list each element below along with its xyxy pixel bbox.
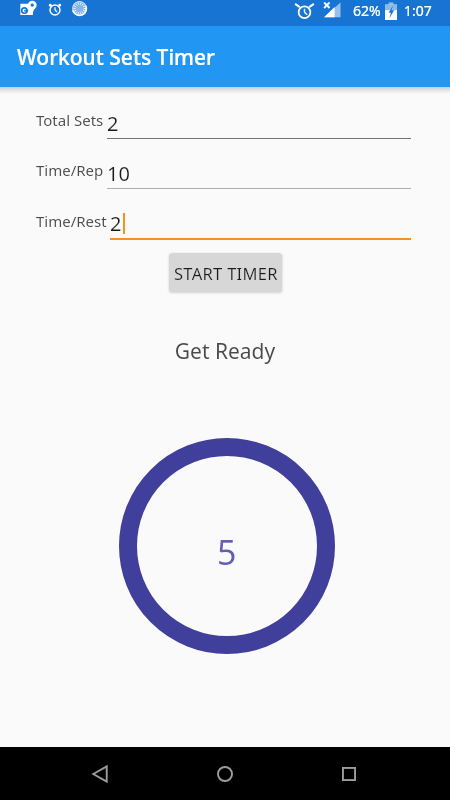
- button[interactable]: Recents: [325, 750, 373, 798]
- staticText: Get Ready: [0, 337, 450, 366]
- staticText: Total Sets: [36, 110, 104, 130]
- button[interactable]: Home: [201, 750, 249, 798]
- staticText: Workout Sets Timer: [17, 43, 215, 72]
- staticText: 10: [107, 160, 130, 187]
- staticText: START TIMER: [174, 262, 278, 284]
- staticText: 1:07: [404, 1, 432, 20]
- staticText: Time/Rep: [36, 160, 104, 180]
- staticText: 2: [110, 210, 122, 237]
- staticText: 62%: [353, 1, 381, 20]
- button[interactable]: Back: [76, 750, 124, 798]
- staticText: Time/Rest: [36, 211, 107, 231]
- staticText: 5: [217, 529, 237, 575]
- button[interactable]: START TIMER: [169, 253, 282, 292]
- staticText: 2: [107, 110, 119, 137]
